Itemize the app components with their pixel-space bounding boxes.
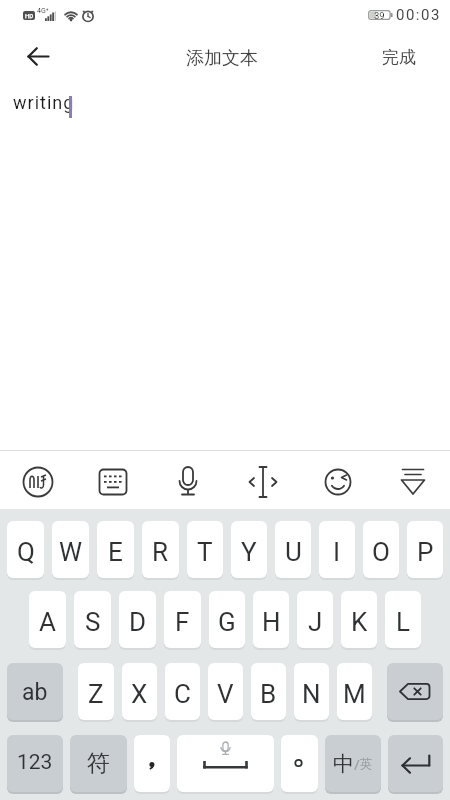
button[interactable]: H: [253, 591, 289, 648]
staticText: X: [131, 679, 148, 709]
staticText: U: [285, 537, 302, 567]
button[interactable]: W: [52, 521, 89, 578]
button[interactable]: ab: [7, 663, 63, 720]
staticText: A: [39, 607, 56, 637]
button[interactable]: [177, 735, 274, 792]
button[interactable]: M: [337, 663, 372, 720]
button[interactable]: X: [122, 663, 157, 720]
staticText: B: [260, 679, 277, 709]
staticText: K: [351, 607, 368, 637]
staticText: E: [108, 537, 123, 567]
button[interactable]: [225, 451, 300, 509]
staticText: writing: [13, 92, 75, 113]
staticText: Y: [241, 537, 257, 567]
button[interactable]: C: [165, 663, 200, 720]
staticText: P: [417, 537, 434, 567]
staticText: 39: [374, 10, 385, 20]
staticText: W: [59, 537, 83, 567]
staticText: I: [333, 537, 341, 567]
staticText: F: [175, 607, 190, 637]
button[interactable]: E: [97, 521, 134, 578]
button[interactable]: [375, 451, 450, 509]
button[interactable]: L: [385, 591, 421, 648]
staticText: L: [396, 607, 411, 637]
button[interactable]: 完成: [372, 38, 426, 75]
button[interactable]: [150, 451, 225, 509]
button[interactable]: D: [119, 591, 156, 648]
button[interactable]: S: [74, 591, 111, 648]
button[interactable]: A: [29, 591, 66, 648]
staticText: C: [174, 679, 191, 709]
staticText: 添加文本: [186, 47, 258, 70]
button[interactable]: G: [209, 591, 245, 648]
button[interactable]: N: [294, 663, 329, 720]
button[interactable]: K: [341, 591, 377, 648]
button[interactable]: [388, 735, 443, 792]
button[interactable]: I: [319, 521, 355, 578]
staticText: 英: [360, 756, 373, 772]
staticText: 完成: [382, 47, 416, 68]
staticText: O: [372, 537, 390, 567]
button[interactable]: F: [164, 591, 201, 648]
button[interactable]: Z: [78, 663, 114, 720]
staticText: S: [85, 607, 101, 637]
button[interactable]: Q: [7, 521, 44, 578]
button[interactable]: [300, 451, 375, 509]
staticText: 中: [333, 751, 354, 777]
staticText: M: [343, 679, 366, 709]
button[interactable]: [75, 451, 150, 509]
staticText: 4G⁺: [37, 7, 49, 15]
staticText: 123: [17, 750, 53, 775]
staticText: T: [197, 537, 213, 567]
button[interactable]: V: [208, 663, 243, 720]
button[interactable]: 123: [7, 735, 63, 792]
staticText: Z: [88, 679, 104, 709]
button[interactable]: U: [275, 521, 311, 578]
button[interactable]: 符: [70, 735, 127, 792]
button[interactable]: [281, 735, 318, 792]
staticText: HD: [25, 12, 34, 19]
button[interactable]: J: [297, 591, 333, 648]
staticText: V: [217, 679, 234, 709]
button[interactable]: R: [142, 521, 179, 578]
button[interactable]: Y: [231, 521, 267, 578]
staticText: D: [129, 607, 147, 637]
staticText: J: [308, 607, 323, 637]
button[interactable]: T: [187, 521, 223, 578]
staticText: 符: [87, 749, 110, 778]
staticText: 00:03: [396, 6, 441, 24]
staticText: N: [302, 679, 321, 709]
staticText: /: [354, 754, 360, 774]
button[interactable]: [18, 36, 58, 76]
button[interactable]: B: [251, 663, 286, 720]
staticText: G: [218, 607, 236, 637]
button[interactable]: [0, 451, 75, 509]
staticText: H: [262, 607, 281, 637]
button[interactable]: P: [407, 521, 443, 578]
staticText: R: [152, 537, 169, 567]
button[interactable]: O: [363, 521, 399, 578]
button[interactable]: [134, 735, 170, 792]
button[interactable]: [387, 663, 443, 720]
button[interactable]: 中: [325, 735, 381, 792]
staticText: Q: [17, 537, 35, 567]
staticText: ab: [22, 679, 48, 706]
